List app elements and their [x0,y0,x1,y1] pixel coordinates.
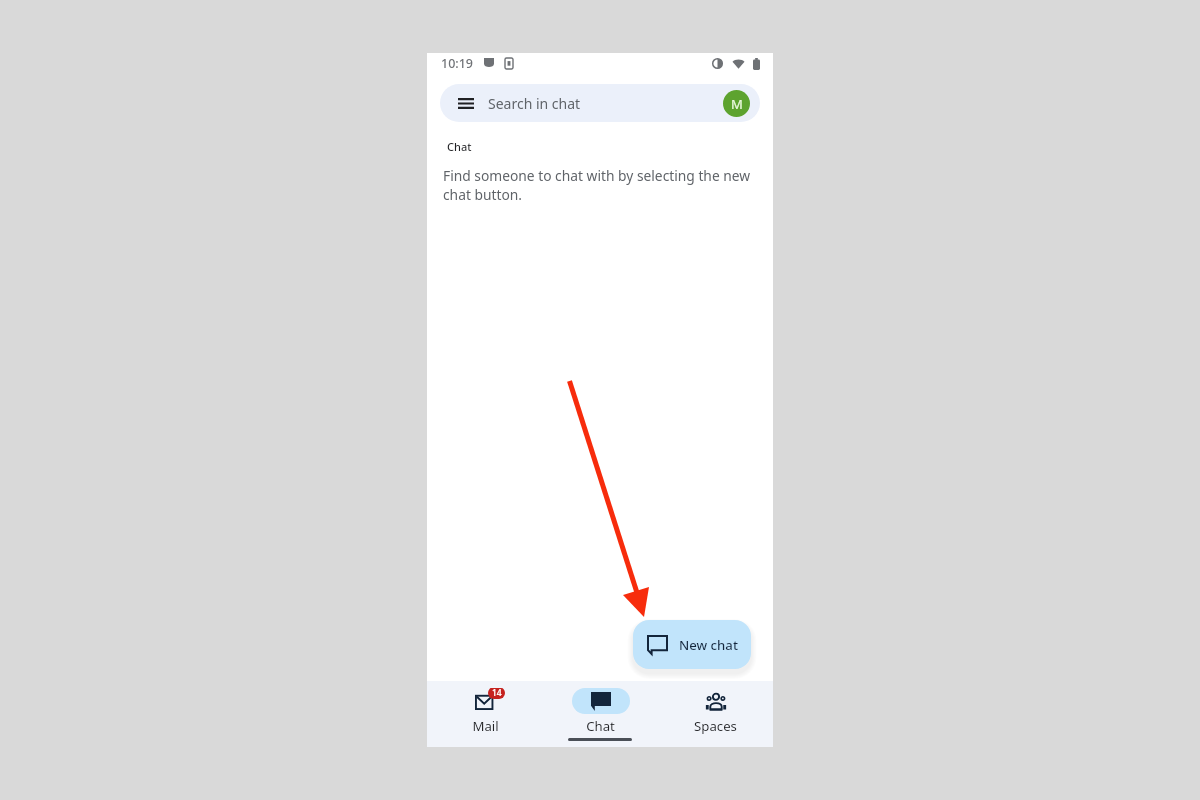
button[interactable]: 14 [427,681,543,734]
button[interactable]: Account [723,90,750,117]
button[interactable]: Chat [543,681,658,734]
staticText: New chat [679,636,738,654]
staticText: Spaces [694,717,737,734]
staticText: Find someone to chat with by selecting t… [443,166,761,204]
staticText: 14 [492,688,502,699]
button[interactable]: New chat [633,620,751,669]
button[interactable]: Spaces [658,681,773,734]
staticText: Chat [586,717,615,734]
other: Open navigation menu [458,98,474,109]
staticText: Search in chat [488,94,581,113]
staticText: 10:19 [441,55,474,72]
staticText: M [731,95,743,113]
staticText: Chat [447,139,472,154]
button[interactable]: Open navigation menu [440,84,760,122]
staticText: Mail [472,717,499,734]
